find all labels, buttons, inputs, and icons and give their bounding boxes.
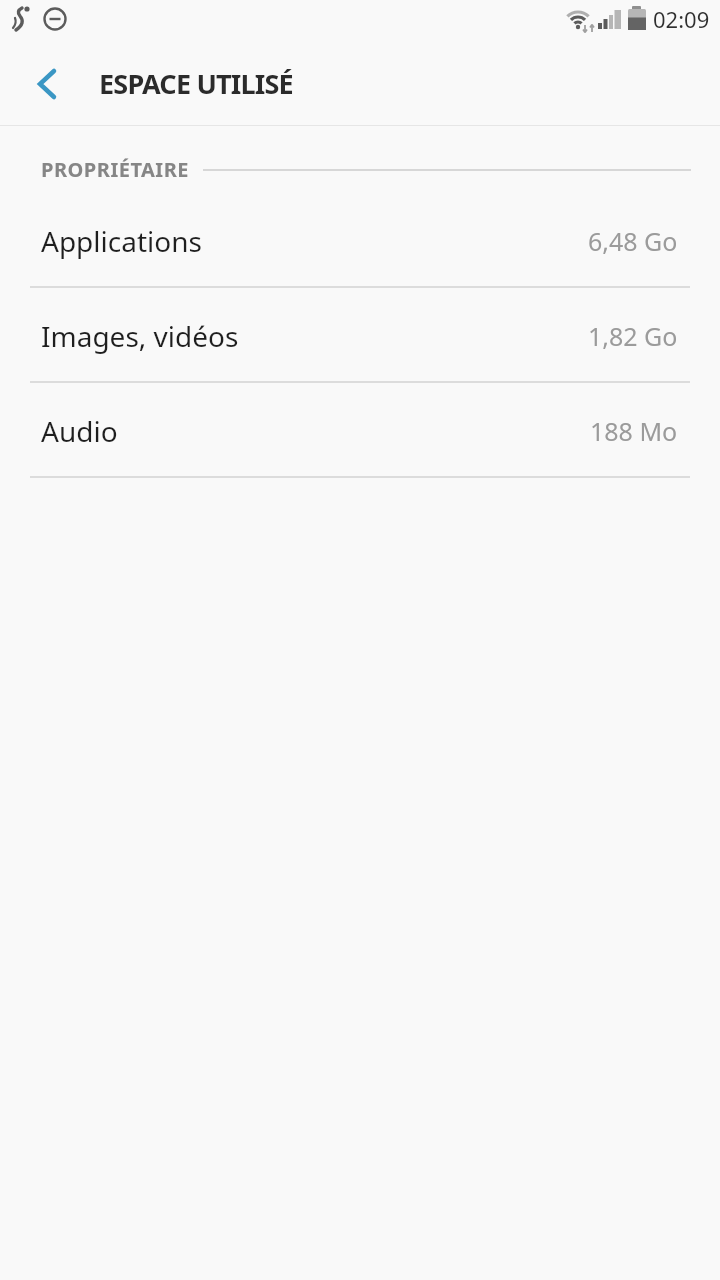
button[interactable]: Audio	[0, 386, 720, 476]
staticText: Images, vidéos	[41, 317, 239, 355]
staticText: 1,82 Go	[588, 319, 678, 353]
button[interactable]	[24, 60, 72, 108]
staticText: 6,48 Go	[588, 224, 678, 258]
staticText: ESPACE UTILISÉ	[99, 65, 293, 102]
staticText: Audio	[41, 412, 118, 450]
staticText: 02:09	[653, 4, 710, 34]
staticText: 188 Mo	[590, 414, 678, 448]
staticText: PROPRIÉTAIRE	[41, 156, 189, 183]
staticText: Applications	[41, 222, 202, 260]
button[interactable]: Applications	[0, 196, 720, 286]
button[interactable]: Images, vidéos	[0, 291, 720, 381]
